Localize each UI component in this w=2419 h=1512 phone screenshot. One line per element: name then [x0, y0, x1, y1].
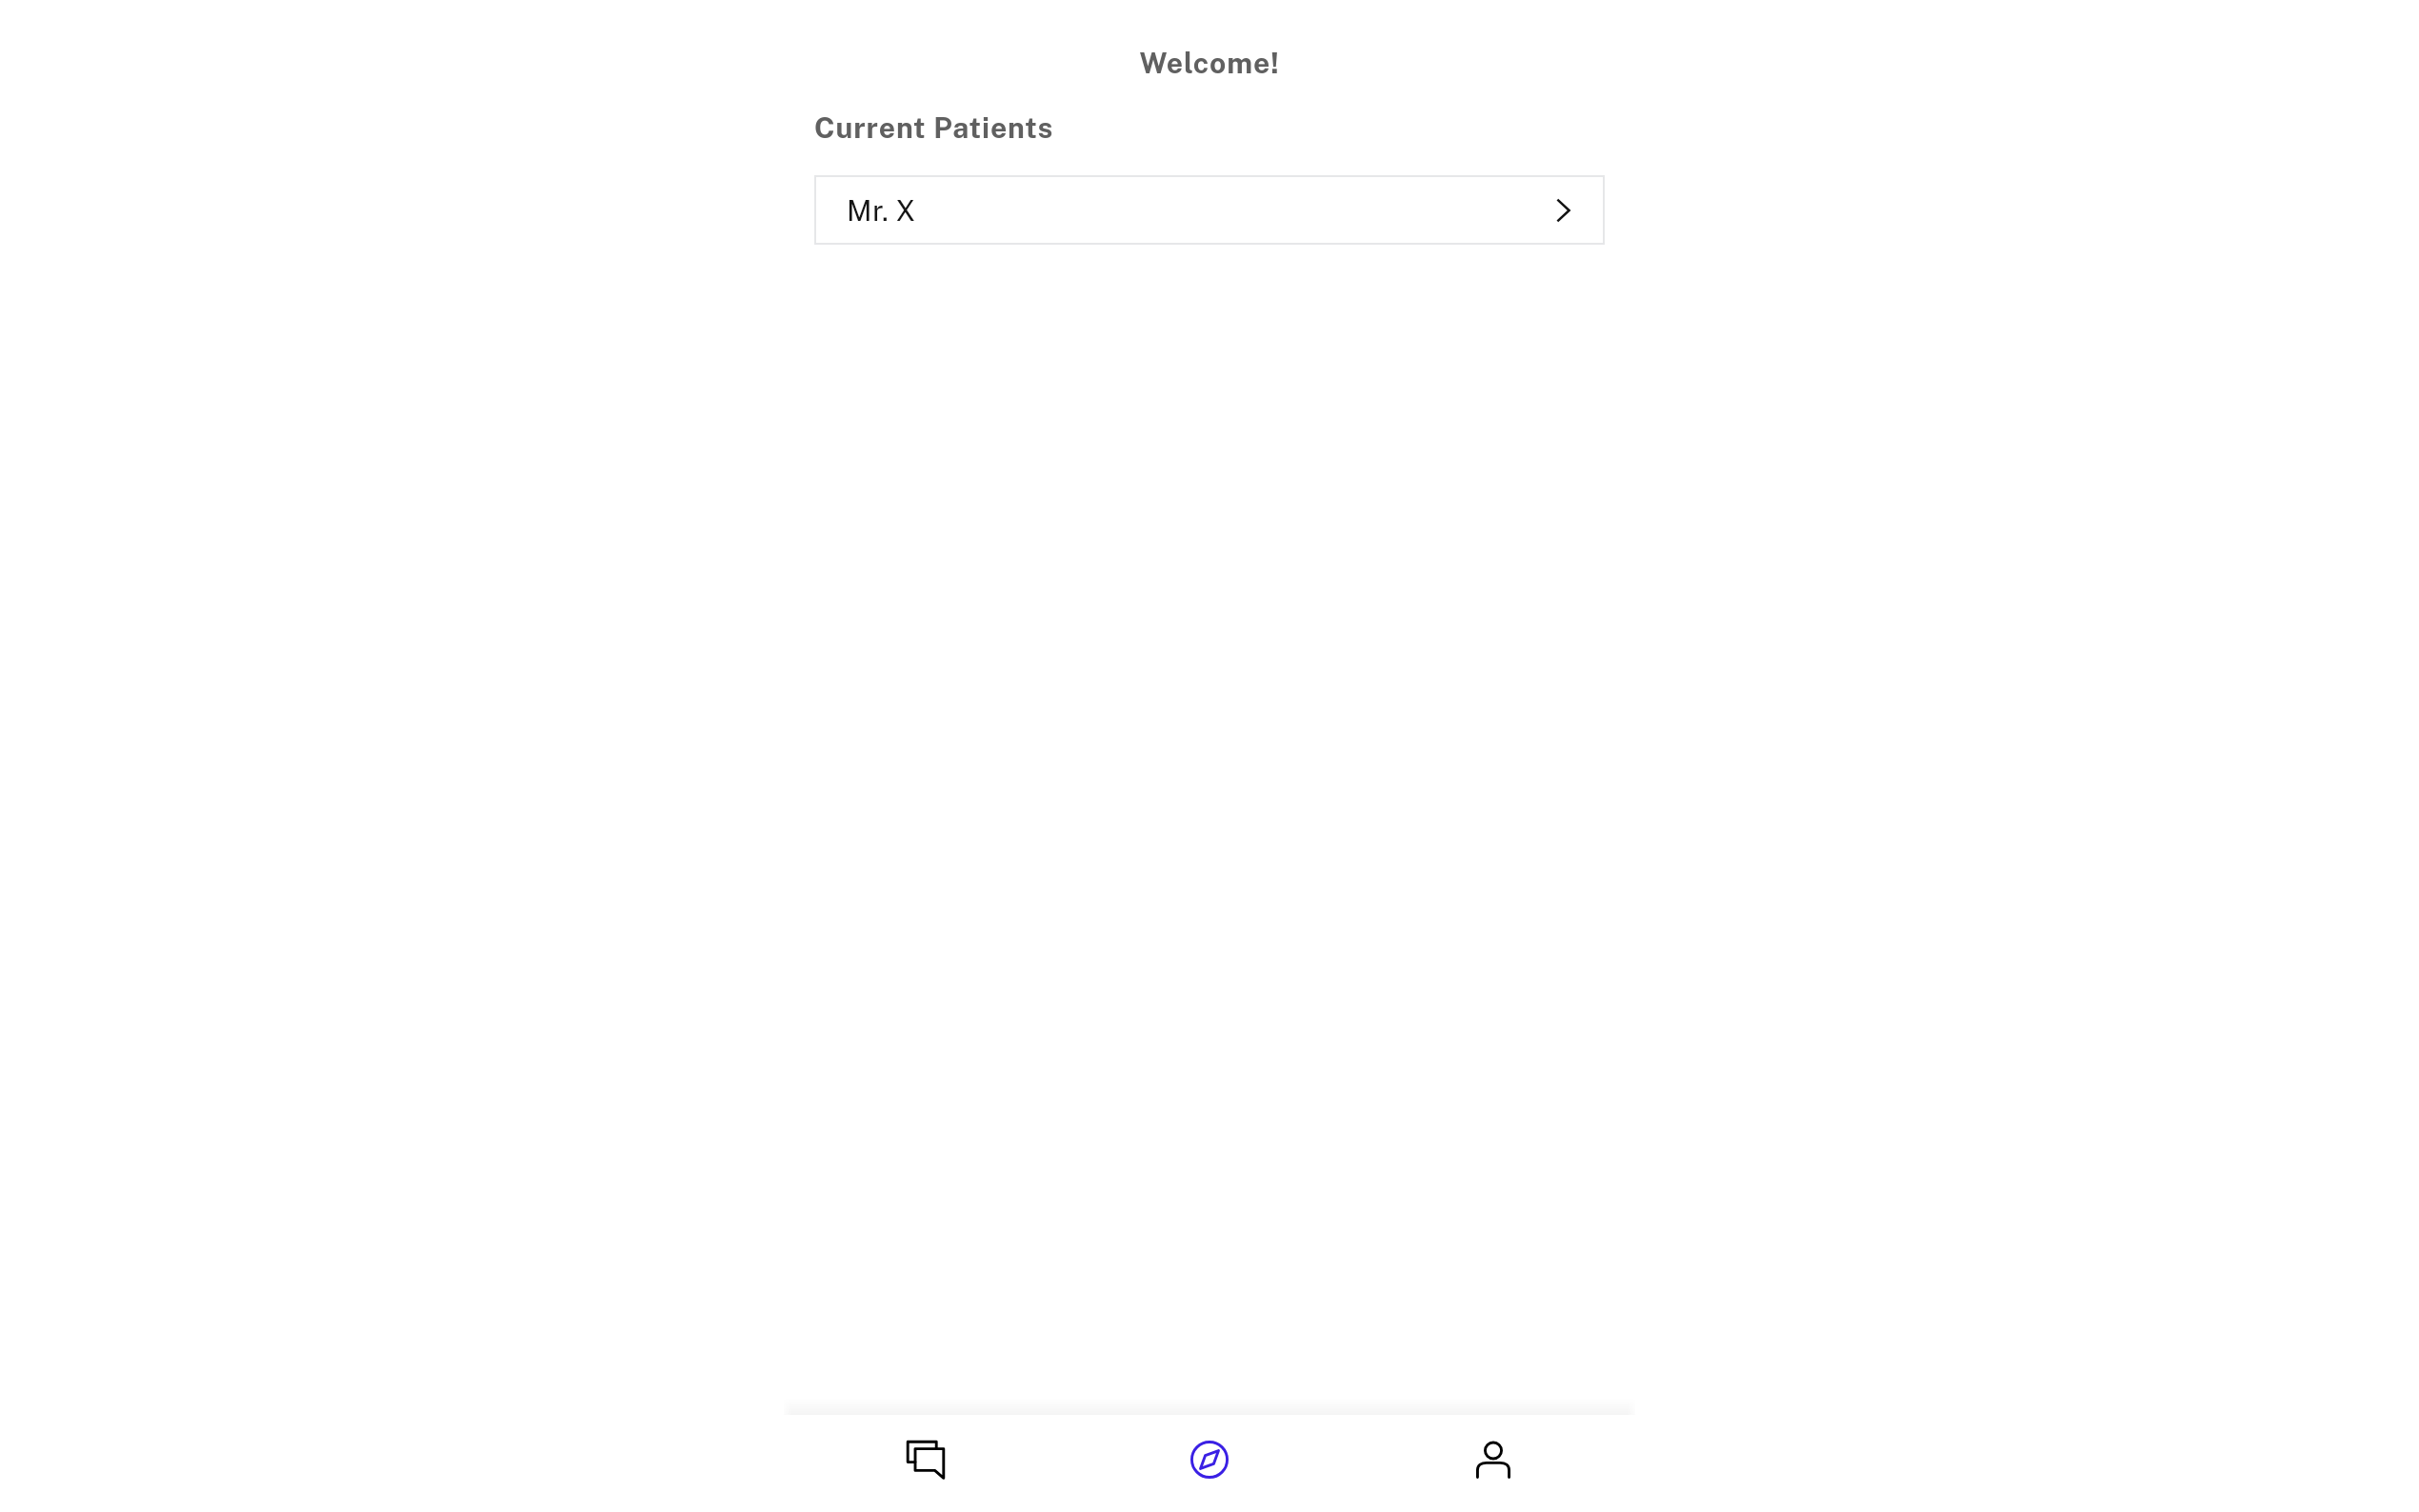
button[interactable]: Explore — [1068, 1415, 1351, 1512]
button[interactable]: Mr. X — [814, 175, 1605, 245]
staticText: Mr. X — [847, 193, 916, 227]
button[interactable]: Profile — [1351, 1415, 1635, 1512]
staticText: Welcome! — [814, 46, 1605, 79]
button[interactable]: Messages — [784, 1415, 1068, 1512]
staticText: Current Patients — [814, 110, 1054, 144]
